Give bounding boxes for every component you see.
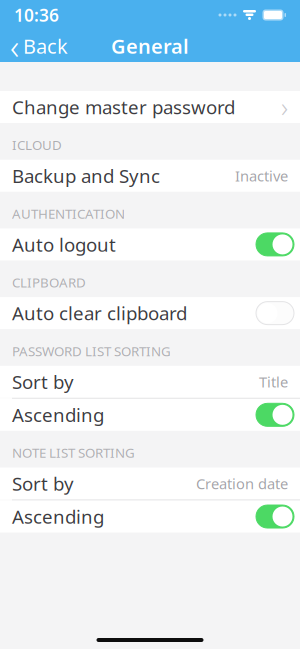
button[interactable]: Sort by	[0, 467, 300, 499]
button[interactable]: Auto clear clipboard	[0, 297, 300, 329]
staticText: Title	[259, 372, 288, 392]
button[interactable]: Auto logout	[0, 228, 300, 260]
staticText: Backup and Sync	[12, 163, 160, 188]
button[interactable]: Backup and Sync	[0, 160, 300, 192]
button[interactable]: Change master password	[0, 91, 300, 123]
staticText: ‹	[10, 23, 19, 69]
staticText: AUTHENTICATION	[12, 205, 125, 222]
staticText: Back	[23, 33, 68, 59]
button[interactable]: Ascending	[0, 399, 300, 431]
staticText: 10:36	[14, 3, 59, 26]
button[interactable]: Ascending	[0, 500, 300, 532]
button[interactable]: ‹	[0, 30, 76, 62]
staticText: General	[111, 33, 189, 59]
staticText: Inactive	[235, 166, 288, 185]
button[interactable]: Sort by	[0, 366, 300, 398]
staticText: Auto logout	[12, 232, 116, 257]
staticText: Sort by	[12, 471, 74, 496]
staticText: PASSWORD LIST SORTING	[12, 342, 171, 360]
staticText: Sort by	[12, 369, 74, 394]
staticText: CLIPBOARD	[12, 273, 86, 291]
staticText: Creation date	[196, 474, 288, 493]
staticText: Ascending	[12, 402, 104, 427]
staticText: ›	[281, 89, 288, 125]
staticText: Auto clear clipboard	[12, 301, 187, 325]
staticText: ICLOUD	[12, 136, 62, 154]
staticText: Change master password	[12, 95, 235, 119]
staticText: NOTE LIST SORTING	[12, 444, 135, 461]
staticText: Ascending	[12, 504, 104, 529]
